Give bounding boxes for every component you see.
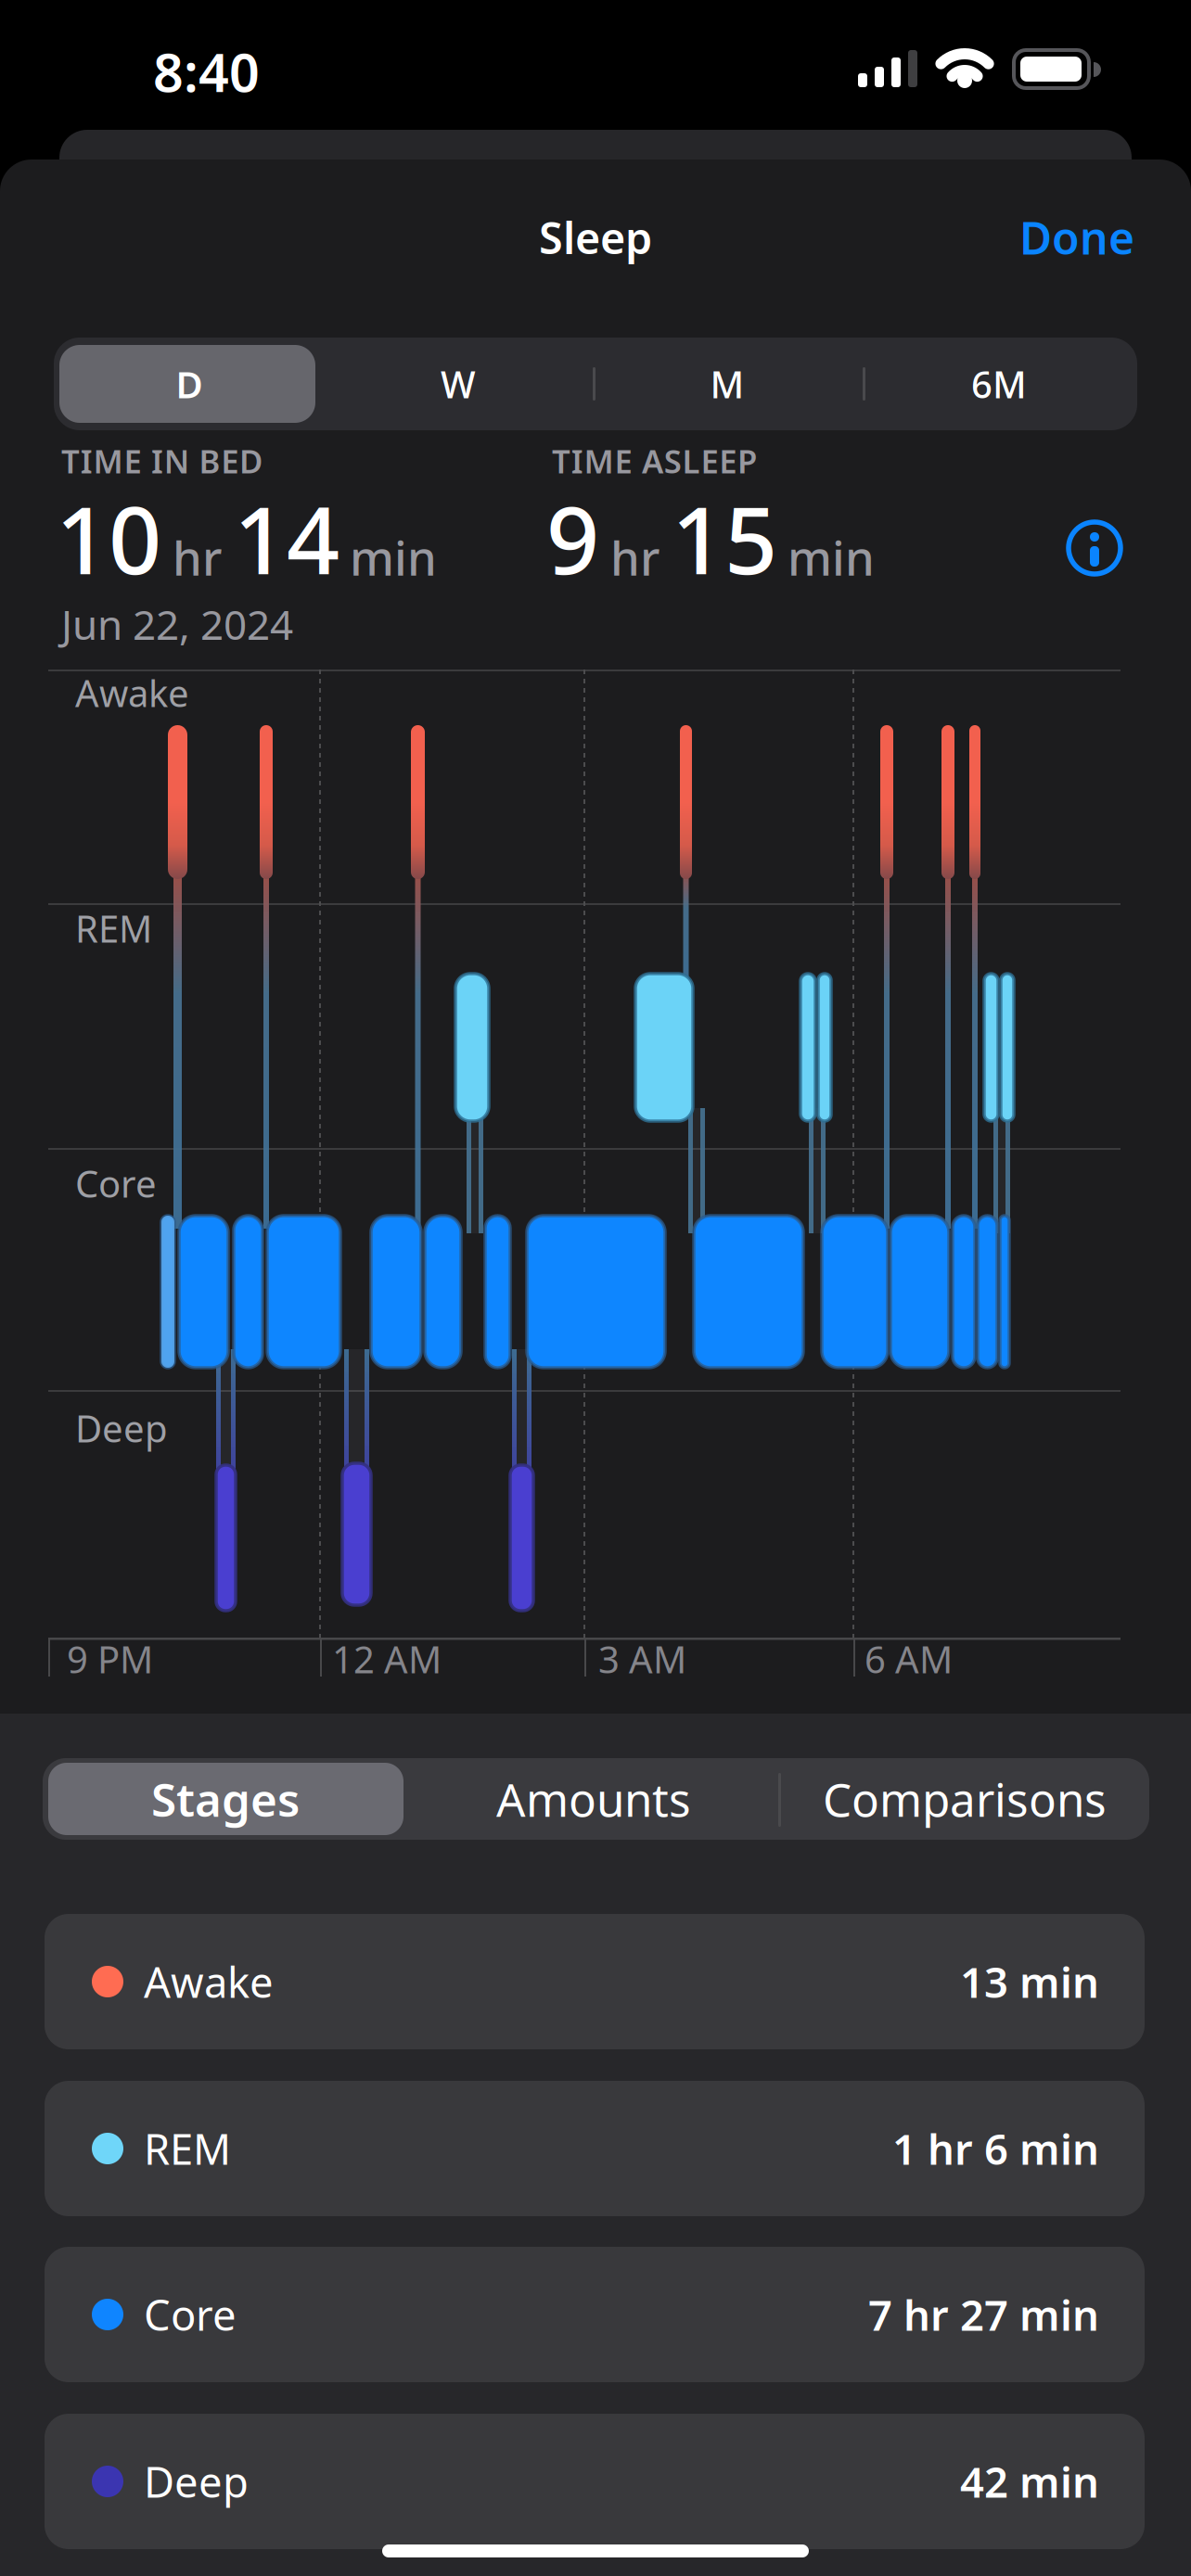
staticText: 6M bbox=[971, 359, 1027, 408]
button[interactable]: REM bbox=[45, 2081, 1145, 2216]
staticText: M bbox=[710, 359, 744, 408]
button[interactable]: D bbox=[61, 351, 318, 416]
staticText: Stages bbox=[151, 1769, 300, 1829]
staticText: 1 hr 6 min bbox=[892, 2121, 1099, 2176]
staticText: Amounts bbox=[496, 1769, 691, 1829]
staticText: 10 bbox=[56, 477, 161, 600]
staticText: REM bbox=[144, 2121, 231, 2176]
staticText: 9 PM bbox=[67, 1634, 153, 1683]
staticText: hr bbox=[173, 526, 222, 589]
button[interactable]: Deep bbox=[45, 2414, 1145, 2549]
staticText: 8:40 bbox=[153, 36, 260, 107]
staticText: 9 bbox=[546, 477, 599, 600]
staticText: 15 bbox=[672, 477, 777, 600]
staticText: Deep bbox=[75, 1403, 168, 1453]
staticText: hr bbox=[610, 526, 660, 589]
staticText: Sleep bbox=[539, 209, 652, 266]
staticText: Deep bbox=[144, 2454, 249, 2509]
button[interactable]: M bbox=[597, 351, 857, 416]
staticText: 13 min bbox=[960, 1954, 1099, 2010]
staticText: D bbox=[176, 359, 203, 408]
staticText: W bbox=[441, 359, 476, 408]
staticText: Done bbox=[1019, 208, 1134, 267]
staticText: Awake bbox=[144, 1954, 274, 2010]
staticText: 7 hr 27 min bbox=[868, 2287, 1099, 2342]
button[interactable]: W bbox=[328, 351, 588, 416]
button[interactable]: Comparisons bbox=[784, 1761, 1146, 1837]
staticText: 42 min bbox=[960, 2454, 1099, 2509]
button[interactable]: Awake bbox=[45, 1914, 1145, 2049]
button[interactable]: Done bbox=[930, 200, 1134, 274]
staticText: 14 bbox=[234, 477, 339, 600]
button[interactable]: 6M bbox=[869, 351, 1129, 416]
staticText: Jun 22, 2024 bbox=[61, 597, 293, 651]
staticText: Comparisons bbox=[823, 1769, 1107, 1829]
button[interactable] bbox=[1063, 516, 1126, 580]
staticText: 12 AM bbox=[332, 1634, 442, 1683]
staticText: min bbox=[788, 526, 875, 589]
staticText: Core bbox=[75, 1159, 157, 1208]
staticText: min bbox=[350, 526, 437, 589]
staticText: Awake bbox=[75, 668, 189, 717]
staticText: TIME IN BED bbox=[61, 440, 263, 482]
button[interactable]: Core bbox=[45, 2247, 1145, 2382]
button[interactable]: Amounts bbox=[413, 1761, 775, 1837]
staticText: 3 AM bbox=[598, 1634, 686, 1683]
staticText: 6 AM bbox=[864, 1634, 953, 1683]
button[interactable]: Stages bbox=[48, 1761, 403, 1837]
staticText: TIME ASLEEP bbox=[552, 440, 757, 482]
staticText: REM bbox=[75, 904, 152, 953]
staticText: Core bbox=[144, 2287, 237, 2342]
